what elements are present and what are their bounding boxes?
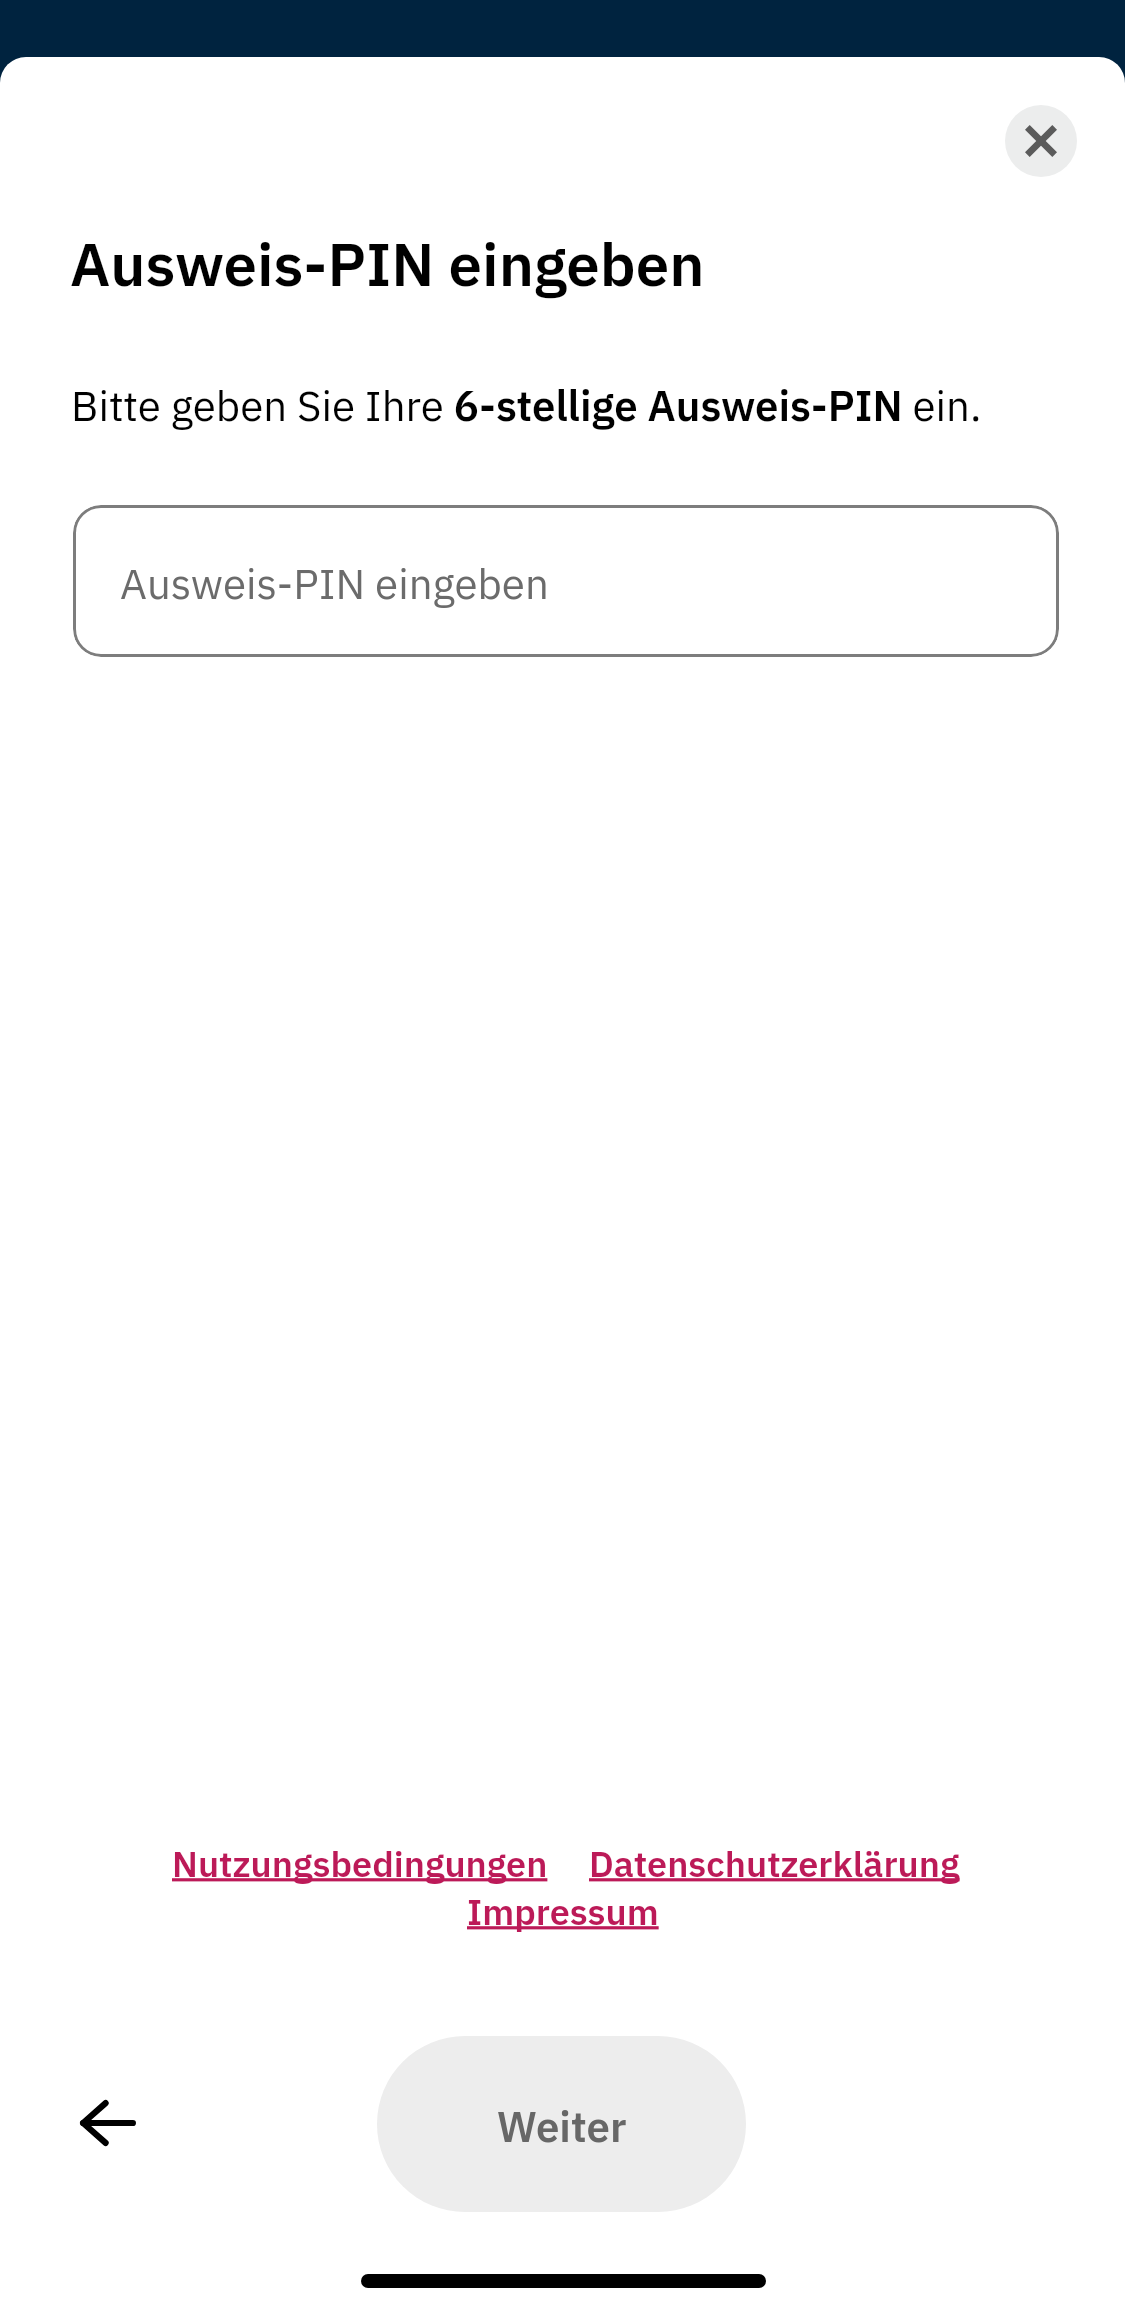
button[interactable]: Zurück	[54, 2069, 162, 2177]
button[interactable]: Schließen	[1005, 105, 1077, 177]
button[interactable]: Ausweis-PIN eingeben	[73, 505, 1059, 657]
button[interactable]: Datenschutzerklärung	[589, 1840, 960, 1887]
staticText: Impressum	[467, 1888, 659, 1935]
staticText: Bitte geben Sie Ihre 6-stellige Ausweis-…	[71, 378, 982, 433]
button[interactable]: Weiter	[377, 2036, 746, 2212]
staticText: Weiter	[497, 2099, 627, 2154]
staticText: Ausweis-PIN eingeben	[120, 556, 549, 611]
staticText: Ausweis-PIN eingeben	[70, 224, 705, 302]
button[interactable]: Nutzungsbedingungen	[172, 1840, 548, 1887]
button[interactable]: Impressum	[467, 1888, 659, 1935]
staticText: Datenschutzerklärung	[589, 1840, 960, 1887]
staticText: Nutzungsbedingungen	[172, 1840, 548, 1887]
